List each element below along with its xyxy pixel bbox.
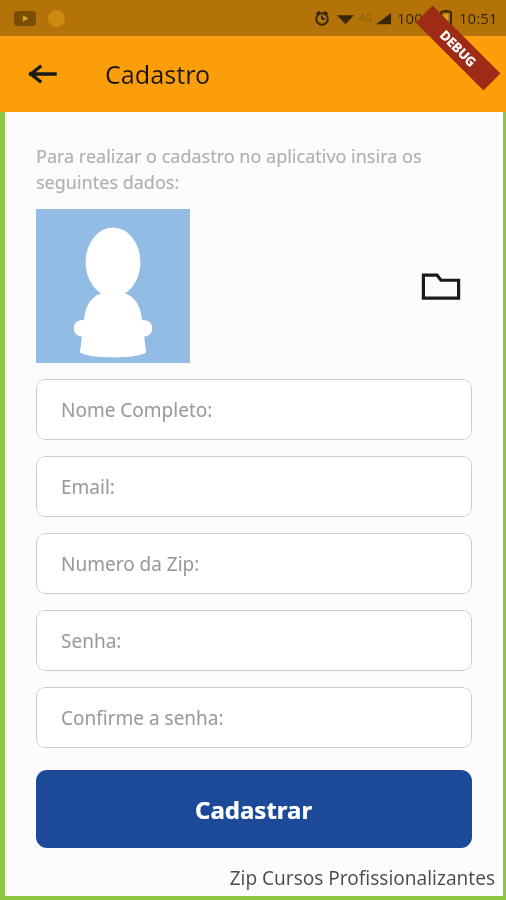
staticText: Confirme a senha: [61,705,224,731]
button[interactable]: Back [20,52,64,96]
button[interactable]: Choose photo [415,260,467,312]
staticText: 10:51 [459,8,498,28]
staticText: 100% [397,8,436,28]
button[interactable]: Email: [36,456,472,517]
button[interactable]: Senha: [36,610,472,671]
staticText: Para realizar o cadastro no aplicativo i… [36,144,422,195]
button[interactable]: Cadastrar [36,770,472,848]
staticText: Numero da Zip: [61,551,200,577]
staticText: Cadastro [105,57,211,91]
button[interactable]: Confirme a senha: [36,687,472,748]
staticText: Nome Completo: [61,397,213,423]
staticText: DEBUG [436,26,481,71]
button[interactable]: Numero da Zip: [36,533,472,594]
staticText: 4G [359,11,372,25]
button[interactable]: Nome Completo: [36,379,472,440]
staticText: Cadastrar [195,793,313,826]
staticText: Email: [61,474,115,500]
staticText: Senha: [61,628,122,654]
staticText: Zip Cursos Profissionalizantes [5,865,495,891]
